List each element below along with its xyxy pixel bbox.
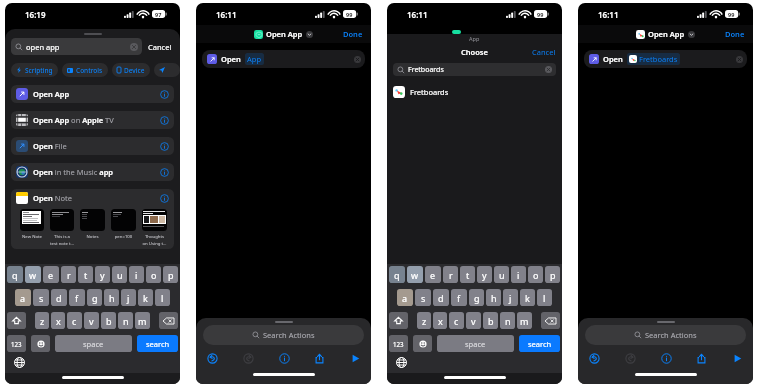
button[interactable]: Shift [389, 312, 408, 329]
button[interactable]: Share [309, 348, 329, 368]
button[interactable]: Open Note [11, 189, 174, 249]
button[interactable]: v [84, 312, 99, 329]
button[interactable]: p [163, 266, 178, 283]
button[interactable] [111, 209, 136, 231]
button[interactable]: 123 [7, 335, 26, 352]
button[interactable]: f [451, 289, 467, 306]
button[interactable]: x [433, 312, 447, 329]
button[interactable]: q [7, 266, 23, 283]
button[interactable]: Run [345, 348, 365, 368]
button[interactable]: Done [335, 26, 371, 42]
button[interactable]: open app [11, 38, 142, 55]
button[interactable]: Shift [7, 312, 26, 329]
button[interactable]: h [486, 289, 501, 306]
button[interactable]: k [138, 289, 153, 306]
button[interactable]: m [135, 312, 150, 329]
button[interactable]: d [51, 289, 67, 306]
button[interactable]: g [87, 289, 102, 306]
button[interactable]: r [443, 266, 458, 283]
button[interactable] [50, 209, 74, 231]
button[interactable]: l [537, 289, 552, 306]
button[interactable]: Search Actions [203, 325, 364, 345]
button[interactable]: y [477, 266, 492, 283]
button[interactable]: Info [656, 348, 676, 368]
button[interactable]: d [433, 289, 449, 306]
button[interactable]: Redo [238, 348, 258, 368]
button[interactable]: Open App [11, 85, 174, 103]
button[interactable]: f [69, 289, 85, 306]
button[interactable]: e [43, 266, 59, 283]
button[interactable]: Emoji [31, 335, 50, 352]
button[interactable]: Done [717, 26, 753, 42]
button[interactable]: e [425, 266, 441, 283]
button[interactable]: Open File [11, 137, 174, 155]
button[interactable]: Cancel [146, 39, 174, 55]
button[interactable]: Open App [254, 29, 313, 39]
button[interactable]: Change keyboard [12, 355, 26, 369]
button[interactable]: q [389, 266, 405, 283]
button[interactable]: Open in the Music app [11, 163, 174, 181]
button[interactable]: Undo [584, 348, 604, 368]
button[interactable]: r [61, 266, 76, 283]
button[interactable]: c [449, 312, 464, 329]
button[interactable]: search [137, 335, 178, 352]
button[interactable]: t [78, 266, 93, 283]
button[interactable]: n [118, 312, 133, 329]
button[interactable]: u [112, 266, 127, 283]
button[interactable]: y [95, 266, 110, 283]
button[interactable]: l [155, 289, 170, 306]
button[interactable]: 123 [389, 335, 408, 352]
button[interactable]: v [466, 312, 481, 329]
button[interactable]: o [146, 266, 161, 283]
button[interactable]: w [407, 266, 423, 283]
button[interactable]: n [500, 312, 515, 329]
button[interactable]: Fretboards [393, 63, 556, 76]
button[interactable]: Share [691, 348, 711, 368]
button[interactable]: space [437, 335, 514, 352]
button[interactable]: Change keyboard [394, 355, 408, 369]
button[interactable]: Open App [636, 29, 695, 39]
button[interactable] [80, 209, 105, 231]
button[interactable]: a [15, 289, 31, 306]
button[interactable]: Search Actions [585, 325, 746, 345]
button[interactable]: i [129, 266, 144, 283]
button[interactable]: j [121, 289, 136, 306]
button[interactable]: Open [202, 50, 365, 68]
button[interactable]: Location [154, 63, 180, 77]
button[interactable]: b [483, 312, 498, 329]
button[interactable]: Emoji [413, 335, 432, 352]
button[interactable]: t [460, 266, 475, 283]
button[interactable]: Fretboards [393, 83, 556, 100]
button[interactable]: j [503, 289, 518, 306]
button[interactable]: space [55, 335, 132, 352]
button[interactable]: w [25, 266, 41, 283]
button[interactable]: g [469, 289, 484, 306]
button[interactable]: b [101, 312, 116, 329]
button[interactable]: Open [584, 50, 747, 68]
button[interactable]: m [517, 312, 532, 329]
button[interactable]: Run [727, 348, 747, 368]
button[interactable]: Undo [202, 348, 222, 368]
button[interactable]: Info [274, 348, 294, 368]
button[interactable]: u [494, 266, 509, 283]
button[interactable]: Backspace [541, 312, 560, 329]
button[interactable] [20, 209, 44, 231]
button[interactable]: search [519, 335, 560, 352]
button[interactable]: Open App on Apple TV [11, 111, 174, 129]
button[interactable]: Cancel [526, 45, 562, 59]
button[interactable]: i [511, 266, 526, 283]
button[interactable]: Scripting [11, 63, 58, 77]
button[interactable]: k [520, 289, 535, 306]
button[interactable]: x [51, 312, 65, 329]
button[interactable]: o [528, 266, 543, 283]
button[interactable]: Backspace [159, 312, 178, 329]
button[interactable]: Redo [620, 348, 640, 368]
button[interactable]: Device [112, 63, 150, 77]
button[interactable]: z [417, 312, 431, 329]
button[interactable]: Controls [62, 63, 108, 77]
button[interactable]: a [397, 289, 413, 306]
button[interactable]: s [415, 289, 431, 306]
button[interactable]: s [33, 289, 49, 306]
button[interactable]: p [545, 266, 560, 283]
button[interactable]: h [104, 289, 119, 306]
